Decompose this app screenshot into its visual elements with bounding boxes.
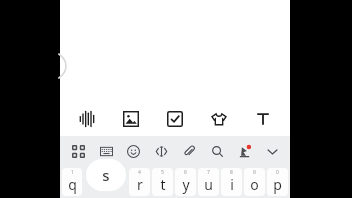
staticText: 6 bbox=[184, 169, 187, 176]
button[interactable]: Emoji bbox=[121, 139, 145, 163]
button[interactable]: Text bbox=[248, 104, 278, 134]
button[interactable]: Checklist bbox=[160, 104, 190, 134]
staticText: y bbox=[182, 175, 190, 194]
staticText: 7 bbox=[207, 169, 210, 176]
button[interactable]: Sticker bbox=[204, 104, 234, 134]
staticText: p bbox=[273, 175, 282, 194]
button[interactable]: Clipboard bbox=[177, 139, 201, 163]
staticText: i bbox=[230, 175, 234, 194]
button[interactable]: 4 bbox=[129, 168, 150, 196]
staticText: o bbox=[250, 175, 259, 194]
button[interactable]: 5 bbox=[152, 168, 173, 196]
button[interactable]: Text editing bbox=[149, 139, 173, 163]
button[interactable]: 7 bbox=[198, 168, 219, 196]
button[interactable]: 1 bbox=[62, 168, 82, 196]
staticText: t bbox=[160, 175, 166, 194]
button[interactable]: Collapse bbox=[260, 139, 284, 163]
staticText: u bbox=[204, 175, 213, 194]
button[interactable]: 6 bbox=[175, 168, 196, 196]
button[interactable]: Search bbox=[205, 139, 229, 163]
button[interactable]: 0 bbox=[267, 168, 288, 196]
button[interactable]: 9 bbox=[244, 168, 265, 196]
staticText: 1 bbox=[71, 169, 74, 176]
staticText: 4 bbox=[138, 169, 141, 176]
staticText: 9 bbox=[253, 169, 256, 176]
staticText: 5 bbox=[161, 169, 164, 176]
button[interactable]: Image bbox=[116, 104, 146, 134]
staticText: 0 bbox=[276, 169, 279, 176]
staticText: s bbox=[102, 165, 110, 185]
button[interactable]: Keyboard bbox=[94, 139, 118, 163]
button[interactable]: Apps bbox=[66, 139, 90, 163]
staticText: r bbox=[137, 175, 143, 194]
button[interactable]: 8 bbox=[221, 168, 242, 196]
staticText: q bbox=[68, 175, 77, 194]
staticText: 8 bbox=[230, 169, 233, 176]
button[interactable]: Stickers bbox=[232, 139, 256, 163]
button[interactable]: Audio bbox=[72, 104, 102, 134]
